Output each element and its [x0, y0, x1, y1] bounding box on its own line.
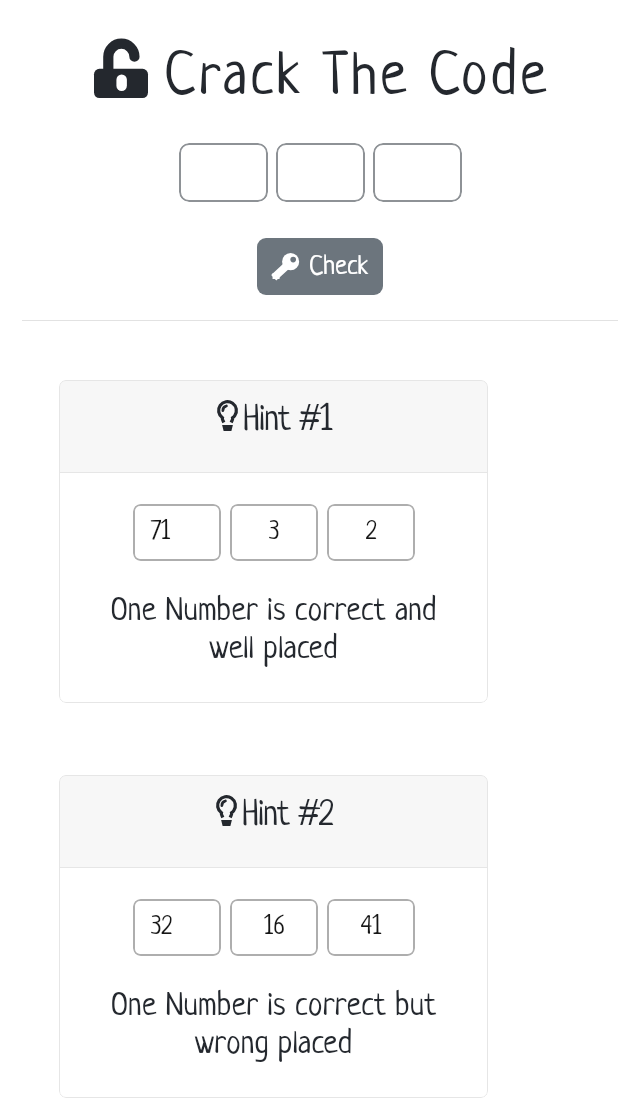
staticText: Check	[309, 253, 369, 281]
button[interactable]: Digit input	[276, 143, 365, 202]
staticText: Hint #1	[243, 402, 332, 440]
staticText: 71	[151, 519, 171, 546]
other: Unlock	[94, 40, 148, 98]
staticText: 3	[269, 519, 280, 546]
button[interactable]: Check code	[257, 238, 383, 295]
other: Check code	[272, 253, 300, 280]
button[interactable]: Digit input	[179, 143, 268, 202]
staticText: One Number is correct and well placed	[87, 595, 460, 667]
staticText: Hint #2	[242, 797, 333, 835]
staticText: 2	[366, 519, 377, 546]
button[interactable]: Hint #2	[59, 775, 488, 1098]
staticText: 16	[264, 914, 285, 941]
staticText: Crack The Code	[164, 47, 550, 110]
staticText: One Number is correct but wrong placed	[87, 990, 460, 1062]
staticText: 32	[151, 914, 172, 941]
button[interactable]: Digit input	[373, 143, 462, 202]
button[interactable]: Hint #1	[59, 380, 488, 703]
staticText: 41	[361, 914, 382, 941]
